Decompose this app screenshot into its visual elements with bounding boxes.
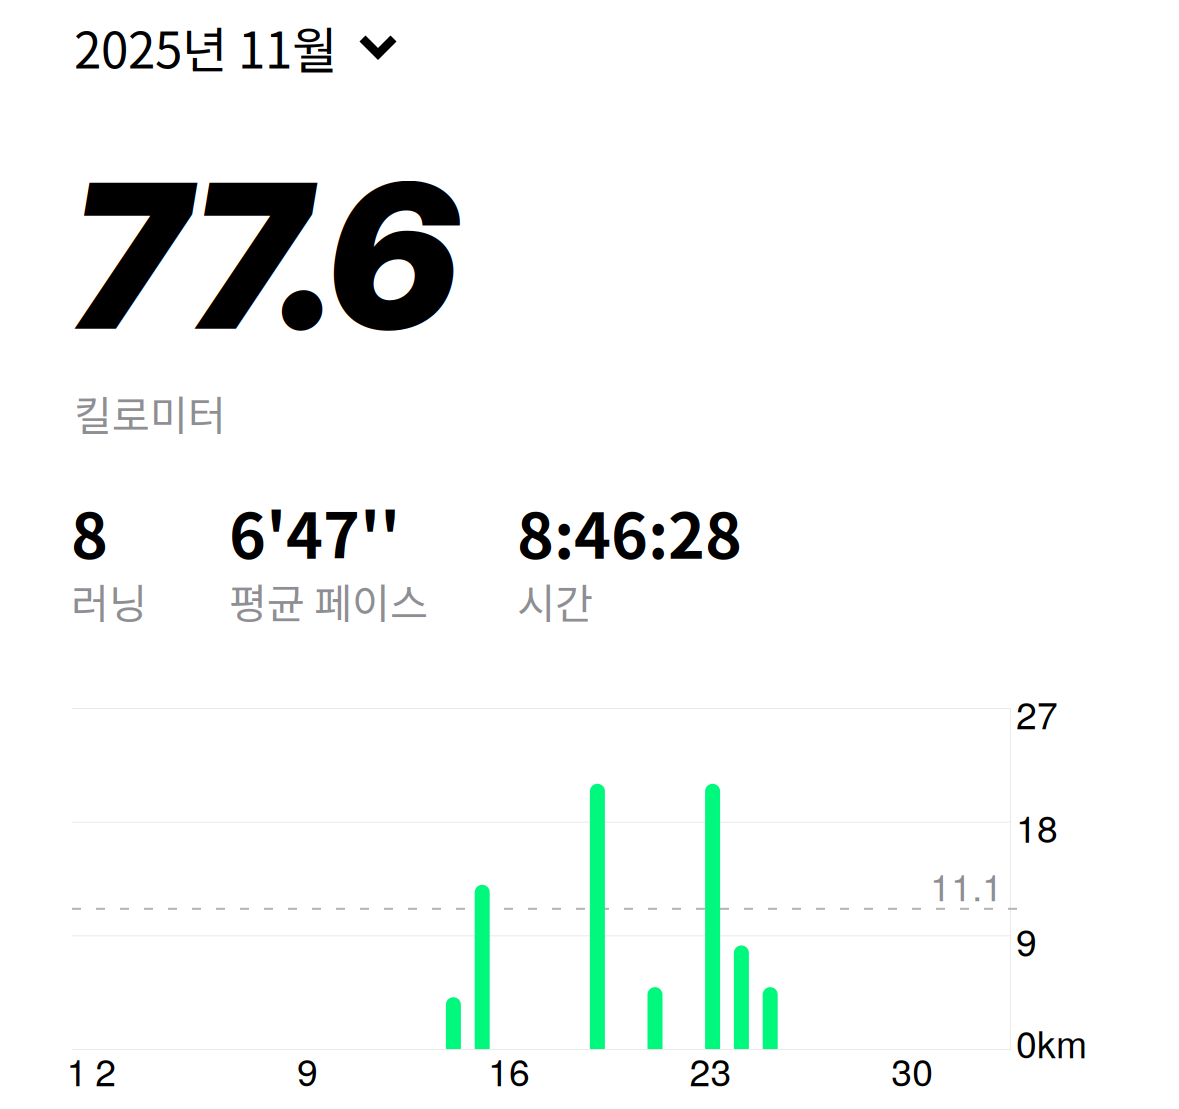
staticText: 11.1 — [930, 858, 1003, 912]
staticText: 러닝 — [71, 571, 147, 631]
staticText: 킬로미터 — [74, 383, 226, 443]
staticText: 시간 — [517, 571, 593, 631]
staticText: 8:46:28 — [517, 486, 742, 577]
staticText: 30 — [891, 1043, 933, 1097]
staticText: 77.6 — [70, 135, 457, 377]
staticText: 평균 페이스 — [229, 571, 428, 631]
staticText: 9 — [1016, 914, 1037, 967]
staticText: 18 — [1016, 800, 1058, 853]
button[interactable]: 2025년 11월 — [74, 4, 474, 90]
staticText: 16 — [488, 1043, 530, 1097]
staticText: 23 — [690, 1043, 732, 1097]
staticText: 8 — [71, 486, 108, 577]
staticText: 2025년 11월 — [74, 11, 337, 83]
staticText: 6'47'' — [229, 486, 400, 577]
staticText: 27 — [1016, 686, 1058, 740]
staticText: 1 — [66, 1043, 87, 1097]
staticText: 0km — [1016, 1015, 1087, 1069]
staticText: 2 — [95, 1043, 116, 1097]
staticText: 9 — [297, 1043, 318, 1097]
